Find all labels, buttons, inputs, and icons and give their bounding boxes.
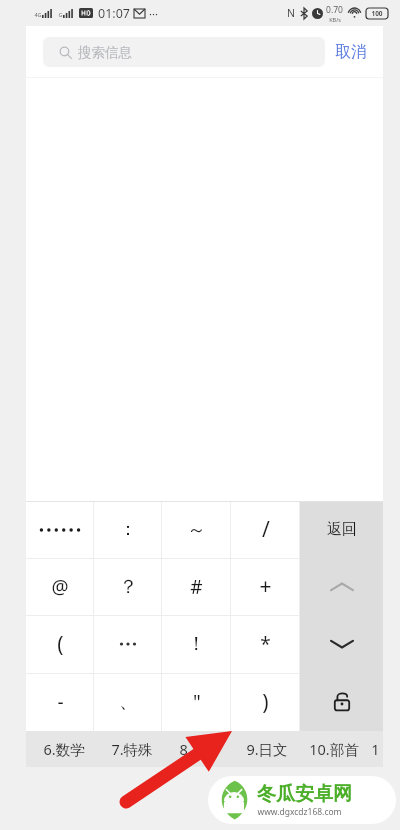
- button[interactable]: 、: [94, 673, 162, 731]
- staticText: @: [51, 574, 69, 600]
- button[interactable]: Function key: [300, 558, 383, 615]
- button[interactable]: [26, 501, 94, 558]
- staticText: 搜索信息: [78, 44, 132, 61]
- button[interactable]: ？: [94, 558, 162, 615]
- button[interactable]: 9.日文: [233, 731, 300, 767]
- staticText: 01:07: [98, 5, 130, 22]
- button[interactable]: 7.特殊: [98, 731, 166, 767]
- button[interactable]: ": [162, 673, 231, 731]
- button[interactable]: ): [231, 673, 300, 731]
- staticText: ): [262, 688, 269, 717]
- staticText: 4G: [34, 11, 42, 18]
- staticText: 、: [119, 690, 138, 714]
- staticText: www.dgxcdz168.com: [257, 806, 342, 818]
- button[interactable]: (: [26, 615, 94, 673]
- staticText: 8.序号: [179, 739, 221, 759]
- staticText: +: [259, 572, 272, 601]
- staticText: 7.特殊: [111, 739, 153, 759]
- staticText: 6.数学: [43, 739, 85, 759]
- staticText: N: [287, 6, 295, 20]
- button[interactable]: @: [26, 558, 94, 615]
- staticText: (: [57, 630, 64, 659]
- button[interactable]: -: [26, 673, 94, 731]
- button[interactable]: 8.序号: [166, 731, 233, 767]
- staticText: ···: [149, 6, 158, 21]
- button[interactable]: *: [231, 615, 300, 673]
- button[interactable]: 10.部首: [300, 731, 367, 767]
- button[interactable]: [94, 615, 162, 673]
- button[interactable]: ！: [162, 615, 231, 673]
- button[interactable]: 6.数学: [30, 731, 98, 767]
- staticText: 取消: [335, 42, 367, 62]
- button[interactable]: ：: [94, 501, 162, 558]
- staticText: ？: [119, 575, 138, 599]
- staticText: #: [190, 574, 203, 600]
- button[interactable]: Function key: [300, 673, 383, 731]
- staticText: ：: [119, 518, 137, 541]
- button[interactable]: Function key: [300, 501, 383, 558]
- staticText: 9.日文: [246, 739, 288, 759]
- button[interactable]: #: [162, 558, 231, 615]
- button[interactable]: ～: [162, 501, 231, 558]
- staticText: 100: [371, 9, 383, 18]
- staticText: *: [260, 631, 271, 657]
- button[interactable]: 1: [367, 731, 383, 767]
- staticText: ": [193, 689, 201, 715]
- staticText: 1: [371, 739, 380, 759]
- staticText: ！: [187, 632, 206, 656]
- staticText: 10.部首: [309, 739, 359, 759]
- button[interactable]: 取消: [335, 42, 367, 62]
- button[interactable]: +: [231, 558, 300, 615]
- button[interactable]: /: [231, 501, 300, 558]
- button[interactable]: Function key: [300, 615, 383, 673]
- button[interactable]: 搜索信息: [43, 37, 325, 67]
- staticText: ～: [187, 518, 206, 542]
- staticText: -: [57, 689, 64, 715]
- staticText: KB/s: [329, 16, 341, 23]
- staticText: 返回: [327, 520, 357, 539]
- staticText: G: [58, 11, 63, 18]
- staticText: 0.70: [326, 4, 343, 16]
- staticText: 冬瓜安卓网: [257, 782, 352, 806]
- staticText: /: [262, 515, 270, 544]
